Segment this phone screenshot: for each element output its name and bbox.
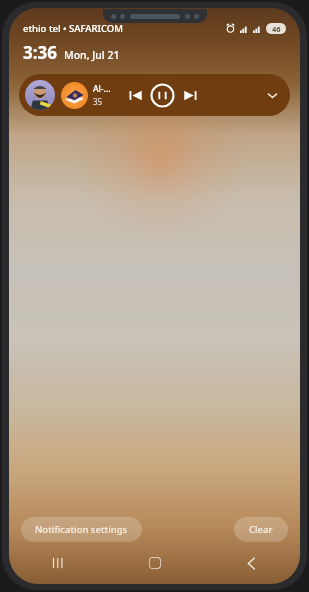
staticText: 35 <box>93 96 103 107</box>
staticText: 3:36 <box>23 41 57 64</box>
button[interactable]: Back <box>203 550 300 576</box>
button[interactable]: Notification settings <box>21 517 142 542</box>
staticText: Clear <box>249 523 273 536</box>
button[interactable]: Home <box>106 550 203 576</box>
staticText: ethio tel • SAFARICOM <box>23 22 123 35</box>
other: Sender avatar <box>25 80 55 110</box>
staticText: Al-... <box>93 83 111 95</box>
staticText: Notification settings <box>35 523 128 536</box>
button[interactable]: Recent apps <box>9 550 106 576</box>
button[interactable]: Previous track <box>125 85 145 105</box>
button[interactable]: Next track <box>180 85 200 105</box>
staticText: Mon, Jul 21 <box>64 48 120 62</box>
button[interactable]: Pause <box>150 83 175 108</box>
button[interactable]: Clear <box>234 517 288 542</box>
button[interactable]: Sender avatar <box>19 74 290 116</box>
staticText: 46 <box>272 24 281 34</box>
other: Album art <box>61 82 88 109</box>
button[interactable]: Expand notification <box>262 85 282 105</box>
